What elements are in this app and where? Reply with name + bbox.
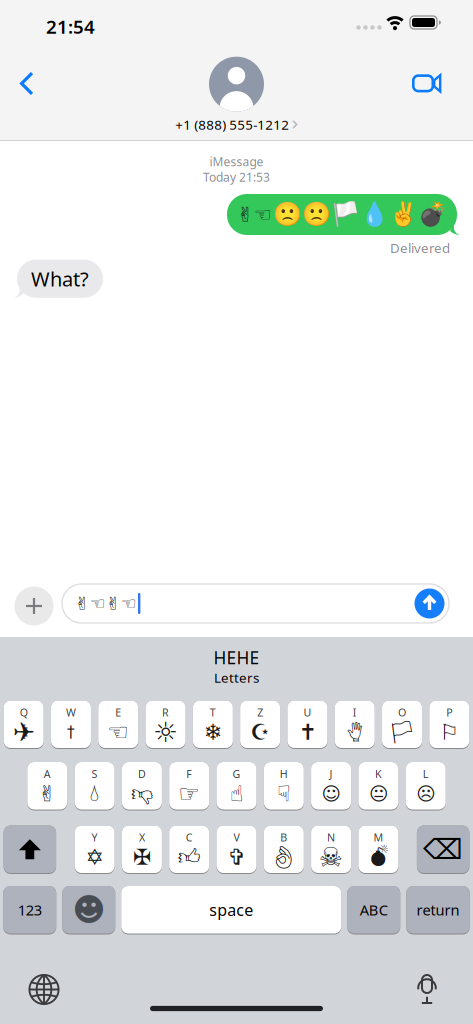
button[interactable]: Z — [240, 700, 280, 749]
staticText: P — [446, 705, 452, 719]
staticText: ☹︎ — [416, 783, 435, 805]
staticText: ☝︎ — [230, 781, 243, 806]
staticText: 🖐︎ — [347, 719, 363, 745]
button[interactable]: Delete — [417, 825, 469, 874]
staticText: Q — [20, 705, 28, 719]
button[interactable]: Back — [10, 63, 44, 103]
staticText: HEHE — [213, 646, 259, 669]
staticText: ✝︎ — [298, 719, 316, 745]
staticText: 👌︎ — [270, 844, 298, 870]
staticText: L — [423, 767, 429, 781]
staticText: A — [44, 767, 51, 781]
staticText: T — [210, 705, 216, 719]
staticText: ☟︎ — [277, 781, 290, 806]
button[interactable]: Send — [414, 588, 444, 618]
staticText: M — [373, 830, 383, 844]
button[interactable]: S — [75, 762, 115, 810]
button[interactable]: 123 — [3, 886, 56, 934]
button[interactable]: FaceTime — [412, 73, 442, 94]
staticText: G — [232, 767, 240, 781]
staticText: 🙁🙁🏳💧✌💣 — [273, 201, 447, 228]
staticText: ⚐︎ — [439, 719, 459, 745]
staticText: ☺︎ — [322, 783, 341, 805]
button[interactable]: J — [311, 762, 351, 810]
button[interactable]: W — [51, 700, 91, 749]
button[interactable]: L — [406, 762, 446, 810]
button[interactable]: Dictate — [416, 975, 438, 1004]
staticText: ☪︎ — [250, 719, 270, 745]
staticText: ✠︎ — [133, 844, 151, 870]
staticText: K — [375, 767, 382, 781]
button[interactable]: C — [169, 825, 209, 874]
button[interactable]: Shift — [4, 825, 56, 874]
button[interactable]: K — [358, 762, 398, 810]
button[interactable]: O — [382, 700, 422, 749]
staticText: ☠︎ — [319, 842, 343, 873]
staticText: ✌︎☜︎✌︎☜︎ — [75, 593, 137, 614]
staticText: 💧︎ — [90, 782, 100, 806]
staticText: ✞︎ — [227, 844, 245, 870]
button[interactable]: ABC — [347, 886, 400, 934]
staticText: 👍︎ — [178, 844, 201, 870]
staticText: W — [66, 705, 76, 719]
button[interactable]: I — [335, 700, 375, 749]
staticText: +1 (888) 555-1212 — [175, 116, 289, 133]
staticText: 👎︎ — [131, 780, 153, 807]
button[interactable]: D — [122, 762, 162, 810]
staticText: Today 21:53 — [203, 169, 270, 185]
staticText: 21:54 — [46, 14, 95, 39]
button[interactable]: Y — [75, 825, 115, 874]
staticText: R — [162, 705, 169, 719]
staticText: ☼︎ — [153, 716, 178, 749]
button[interactable]: More options — [14, 586, 53, 625]
button[interactable]: X — [122, 825, 162, 874]
button[interactable]: T — [193, 700, 233, 749]
staticText: Z — [257, 705, 263, 719]
staticText: E — [115, 705, 121, 719]
staticText: H — [280, 767, 288, 781]
staticText: 💣︎ — [369, 843, 387, 871]
staticText: ABC — [360, 900, 388, 919]
staticText: F — [186, 767, 192, 781]
button[interactable]: +1 (888) 555-1212 — [175, 57, 298, 133]
button[interactable]: B — [264, 825, 304, 874]
button[interactable]: Q — [4, 700, 44, 749]
staticText: I — [353, 705, 357, 719]
button[interactable]: G — [216, 762, 256, 810]
staticText: return — [416, 900, 459, 919]
button[interactable]: A — [27, 762, 67, 810]
staticText: ⌫ — [423, 833, 463, 866]
button[interactable]: P — [429, 700, 469, 749]
staticText: What? — [31, 265, 89, 292]
staticText: X — [139, 830, 145, 844]
staticText: ❄︎ — [204, 719, 222, 745]
button[interactable]: Next keyboard — [28, 973, 60, 1005]
button[interactable]: F — [169, 762, 209, 810]
staticText: Y — [92, 830, 98, 844]
button[interactable]: H — [264, 762, 304, 810]
button[interactable]: E — [98, 700, 138, 749]
button[interactable]: return — [406, 886, 470, 934]
button[interactable]: R — [145, 700, 185, 749]
button[interactable]: U — [287, 700, 327, 749]
staticText: 123 — [18, 900, 42, 919]
button[interactable]: N — [311, 825, 351, 874]
staticText: Letters — [214, 669, 259, 686]
button[interactable]: space — [121, 886, 341, 934]
staticText: 🏳︎ — [388, 719, 416, 745]
staticText: S — [92, 767, 98, 781]
staticText: N — [327, 830, 335, 844]
staticText: ✈ — [13, 717, 35, 748]
staticText: ✌︎☜︎ — [237, 203, 272, 226]
button[interactable]: Emoji — [62, 886, 115, 934]
staticText: ✌︎ — [38, 781, 56, 806]
staticText: B — [280, 830, 287, 844]
staticText: Delivered — [390, 239, 450, 257]
button[interactable]: M — [358, 825, 398, 874]
staticText: O — [398, 705, 406, 719]
button[interactable]: V — [216, 825, 256, 874]
staticText: ✡︎ — [86, 844, 104, 870]
staticText: † — [67, 723, 75, 741]
staticText: iMessage — [209, 153, 263, 169]
staticText: ☻ — [72, 891, 105, 928]
